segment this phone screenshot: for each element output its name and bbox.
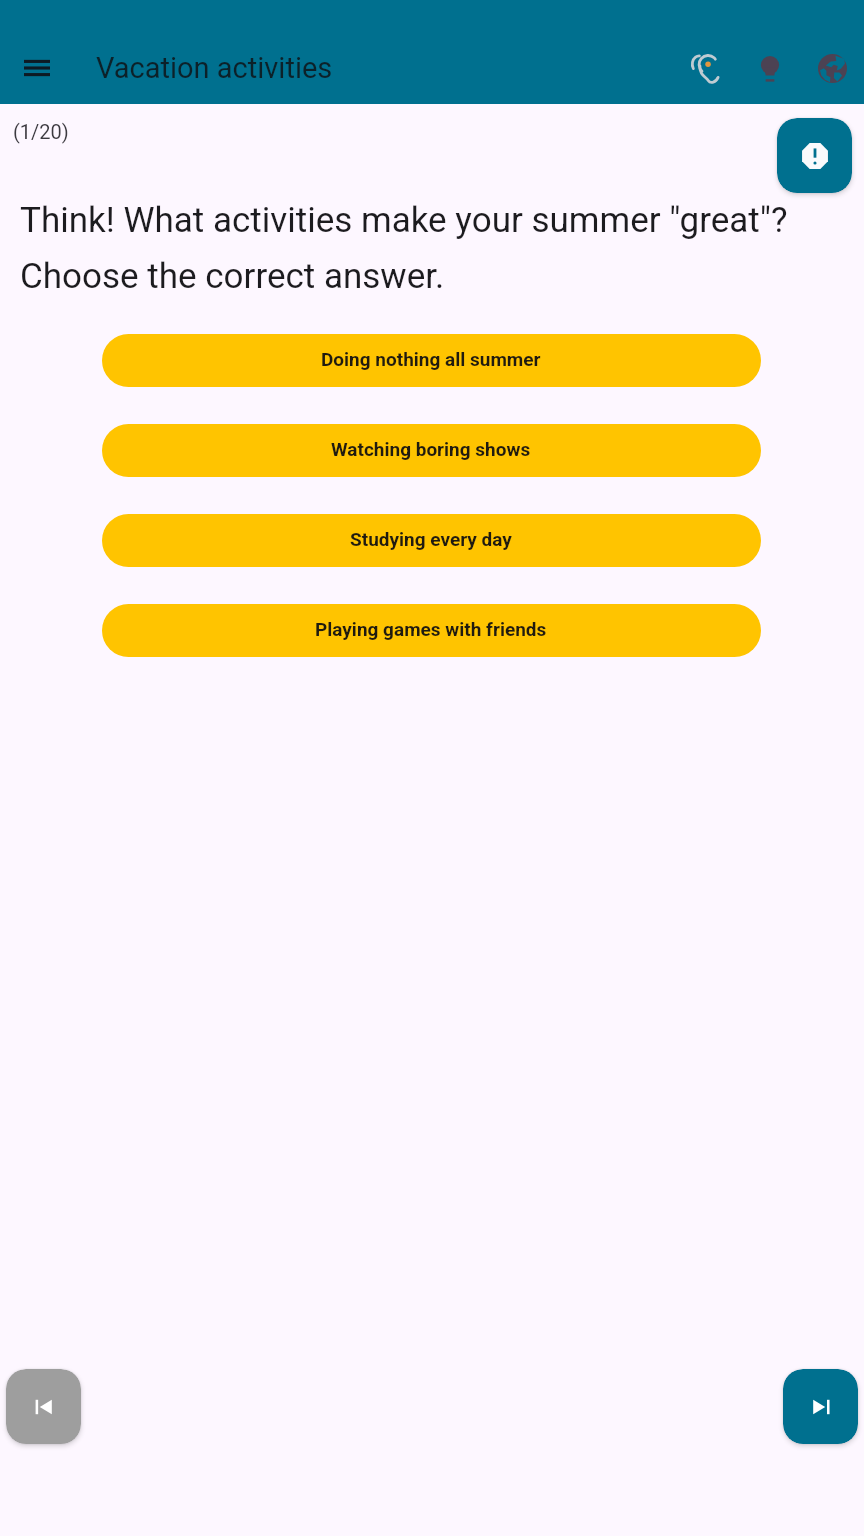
button[interactable]: Doing nothing all summer [102, 334, 761, 387]
staticText: Playing games with friends [315, 618, 547, 640]
button[interactable]: Next question [783, 1369, 858, 1444]
staticText: Vacation activities [96, 51, 333, 85]
button[interactable]: Previous question [6, 1369, 81, 1444]
staticText: Studying every day [350, 528, 512, 550]
button[interactable]: Hint [738, 37, 801, 100]
staticText: (1/20) [13, 120, 69, 143]
staticText: Watching boring shows [331, 438, 531, 460]
button[interactable]: Playing games with friends [102, 604, 761, 657]
staticText: Think! What activities make your summer … [20, 200, 820, 296]
button[interactable]: Language [801, 37, 864, 100]
staticText: Doing nothing all summer [321, 348, 541, 370]
button[interactable]: Menu [11, 42, 63, 94]
button[interactable]: Report [777, 118, 852, 193]
button[interactable]: Watching boring shows [102, 424, 761, 477]
button[interactable]: Studying every day [102, 514, 761, 567]
button[interactable]: Hearing [675, 37, 738, 100]
